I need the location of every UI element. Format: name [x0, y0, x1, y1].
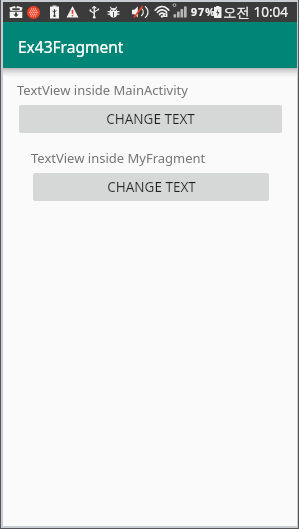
button[interactable]: CHANGE TEXT: [33, 173, 269, 201]
staticText: TextView inside MyFragment: [31, 149, 206, 167]
staticText: Ex43Fragment: [18, 36, 124, 57]
staticText: TextView inside MainActivity: [17, 81, 188, 99]
staticText: 오전 10:04: [223, 3, 289, 21]
staticText: 97%: [191, 5, 216, 19]
button[interactable]: CHANGE TEXT: [19, 105, 282, 133]
staticText: CHANGE TEXT: [106, 110, 195, 128]
staticText: CHANGE TEXT: [107, 178, 196, 196]
